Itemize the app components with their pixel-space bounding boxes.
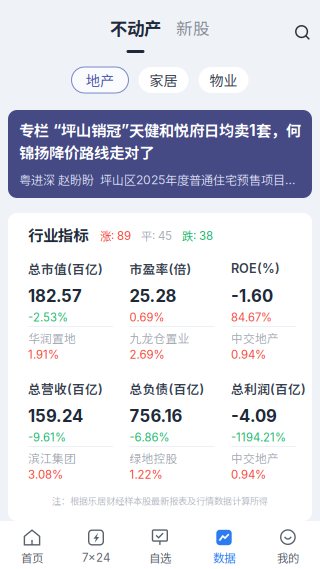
staticText: 九龙仓置业 bbox=[129, 329, 189, 346]
staticText: 家居 bbox=[149, 70, 177, 90]
staticText: 自选 bbox=[149, 549, 171, 566]
staticText: 总市值(百亿) bbox=[28, 259, 103, 278]
button[interactable]: 7x24 bbox=[64, 521, 128, 569]
staticText: 绿地控股 bbox=[129, 449, 177, 466]
staticText: 首页 bbox=[21, 549, 43, 566]
staticText: 滨江集团 bbox=[28, 449, 76, 466]
staticText: 总营收(百亿) bbox=[28, 379, 103, 398]
button[interactable]: 自选 bbox=[128, 521, 192, 569]
staticText: 跌: 38 bbox=[182, 227, 213, 244]
button[interactable]: 搜索 bbox=[289, 19, 316, 46]
staticText: 3.08% bbox=[28, 468, 63, 481]
staticText: ROE(%) bbox=[231, 261, 280, 276]
staticText: -2.53% bbox=[28, 311, 68, 324]
button[interactable]: 数据 bbox=[192, 521, 256, 569]
button[interactable]: 新股 bbox=[176, 19, 210, 53]
staticText: 专栏 “坪山销冠”天健和悦府日均卖1套，何锦扬降价路线走对了 bbox=[19, 119, 301, 163]
button[interactable]: 首页 bbox=[0, 521, 64, 569]
staticText: 地产 bbox=[86, 70, 114, 90]
staticText: 新股 bbox=[176, 15, 210, 39]
staticText: -1.60 bbox=[231, 286, 273, 306]
staticText: 7x24 bbox=[82, 551, 110, 564]
staticText: 25.28 bbox=[129, 286, 176, 306]
staticText: 中交地产 bbox=[231, 329, 279, 346]
staticText: 159.24 bbox=[28, 406, 83, 426]
staticText: 不动产 bbox=[110, 15, 161, 40]
staticText: 我的 bbox=[277, 549, 299, 566]
staticText: 数据 bbox=[213, 549, 235, 566]
staticText: 2.69% bbox=[129, 348, 164, 361]
button[interactable]: 家居 bbox=[138, 67, 188, 93]
staticText: 粤进深 赵盼盼 坪山区2025年度普通住宅预售项目… bbox=[19, 171, 295, 188]
staticText: 1.22% bbox=[129, 468, 162, 481]
staticText: 总利润(百亿) bbox=[231, 379, 306, 398]
button[interactable]: 物业 bbox=[198, 67, 248, 93]
staticText: 总负债(百亿) bbox=[129, 379, 204, 398]
staticText: -9.61% bbox=[28, 431, 66, 444]
staticText: 0.94% bbox=[231, 348, 266, 361]
staticText: 0.94% bbox=[231, 468, 266, 481]
button[interactable]: 地产 bbox=[71, 67, 128, 93]
button[interactable]: 我的 bbox=[256, 521, 320, 569]
button[interactable]: 专栏 “坪山销冠”天健和悦府日均卖1套，何锦扬降价路线走对了 bbox=[8, 110, 312, 198]
staticText: 中交地产 bbox=[231, 449, 279, 466]
staticText: 1.91% bbox=[28, 348, 59, 361]
button[interactable]: 不动产 bbox=[110, 19, 161, 53]
staticText: 物业 bbox=[209, 70, 237, 90]
staticText: 84.67% bbox=[231, 311, 272, 324]
staticText: 行业指标 bbox=[28, 223, 88, 246]
staticText: 华润置地 bbox=[28, 329, 76, 346]
staticText: 756.16 bbox=[129, 406, 182, 426]
staticText: 注：根据乐居财经样本股最新报表及行情数据计算所得 bbox=[52, 494, 268, 507]
staticText: 涨: 89 bbox=[100, 227, 131, 244]
staticText: -6.86% bbox=[129, 431, 169, 444]
staticText: -4.09 bbox=[231, 406, 277, 426]
staticText: -1194.21% bbox=[231, 431, 286, 444]
staticText: 平: 45 bbox=[141, 227, 172, 244]
staticText: 市盈率(倍) bbox=[129, 259, 191, 278]
staticText: 182.57 bbox=[28, 286, 82, 306]
staticText: 0.69% bbox=[129, 311, 164, 324]
